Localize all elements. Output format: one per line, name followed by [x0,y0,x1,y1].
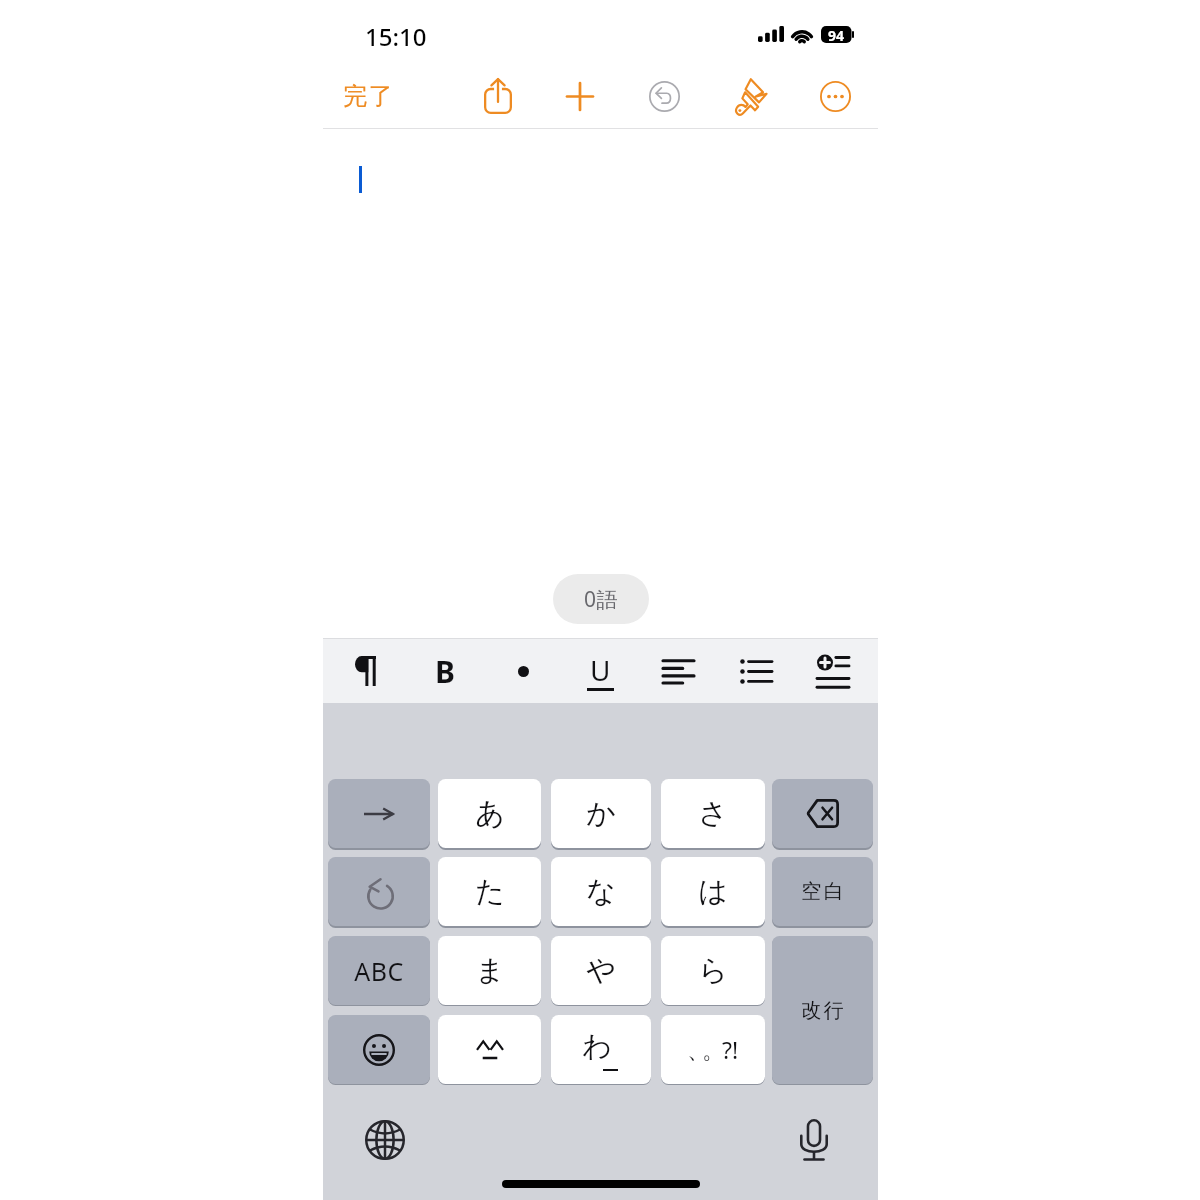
staticText: ABC [354,954,404,988]
button[interactable]: Emoji [328,1015,430,1084]
staticText: ?! [722,1034,739,1064]
staticText: 改行 [800,998,845,1023]
button[interactable]: New [543,68,617,124]
staticText: な [586,873,616,910]
button[interactable]: Indent [799,639,867,703]
button[interactable]: ABC [328,936,430,1005]
button[interactable]: た [438,857,541,926]
staticText: B [435,651,455,692]
staticText: あ [475,795,505,832]
button[interactable]: Bullet [489,639,557,703]
button[interactable]: ま [438,936,541,1005]
staticText: 94 [828,26,845,43]
button[interactable]: か [551,779,651,848]
button[interactable]: あ [438,779,541,848]
staticText: わ [582,1028,612,1065]
button[interactable]: Next candidate [328,779,430,848]
button[interactable]: 完了 [333,68,403,124]
staticText: ら [698,952,728,989]
button[interactable]: Dictation [786,1112,842,1168]
button[interactable]: な [551,857,651,926]
staticText: や [586,952,616,989]
button[interactable]: Undo [328,857,430,926]
button[interactable]: 、 [661,1015,765,1084]
button[interactable]: 0語 [553,574,649,624]
staticText: た [475,873,505,910]
button[interactable]: Underline [566,639,634,703]
button[interactable]: 改行 [772,936,873,1084]
button[interactable]: Align left [644,639,712,703]
staticText: U [590,651,611,689]
staticText: か [586,795,616,832]
staticText: 0語 [584,585,619,614]
button[interactable]: 空白 [772,857,873,926]
button[interactable]: ら [661,936,765,1005]
button[interactable]: Bulleted list [721,639,789,703]
button[interactable]: わ [551,1015,651,1084]
button[interactable]: さ [661,779,765,848]
staticText: 、 [687,1036,710,1065]
button[interactable]: Bold [411,639,479,703]
staticText: 。 [702,1036,725,1065]
staticText: ま [475,952,505,989]
button[interactable]: や [551,936,651,1005]
staticText: は [698,873,728,910]
button[interactable]: Kaomoji [438,1015,541,1084]
staticText: さ [698,795,728,832]
button[interactable]: More [798,68,872,124]
button[interactable]: Undo [627,68,701,124]
staticText: 完了 [343,81,393,111]
staticText: 15:10 [365,20,427,53]
button[interactable]: Paragraph style [333,639,401,703]
button[interactable]: Backspace [772,779,873,848]
button[interactable]: は [661,857,765,926]
button[interactable]: Share [461,68,535,124]
button[interactable]: Markup [714,68,788,124]
staticText: 空白 [800,879,845,904]
button[interactable]: Next keyboard [357,1112,413,1168]
